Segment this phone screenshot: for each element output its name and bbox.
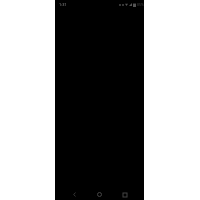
button[interactable]: Home	[87, 189, 112, 200]
staticText: 85%	[137, 2, 144, 7]
button[interactable]: Back	[62, 189, 87, 200]
button[interactable]: Recent apps	[112, 189, 137, 200]
staticText: 1:31	[59, 2, 67, 7]
